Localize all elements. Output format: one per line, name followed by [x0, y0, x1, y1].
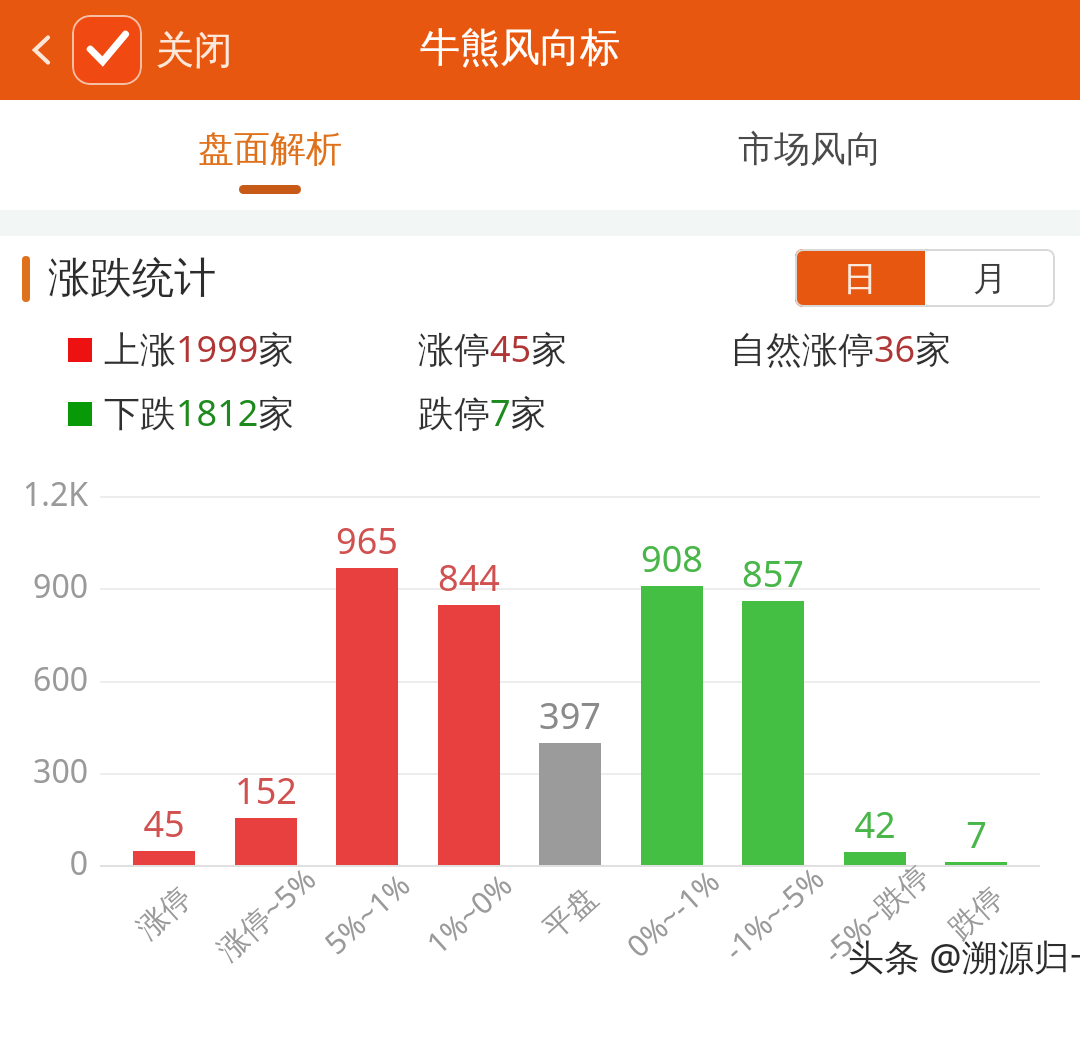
staticText: 965 — [336, 516, 398, 565]
staticText: 涨停~5% — [208, 858, 324, 969]
button[interactable]: Back — [14, 22, 70, 78]
staticText: 市场风向 — [738, 126, 882, 171]
staticText: 0 — [69, 841, 88, 885]
staticText: 397 — [539, 691, 601, 740]
staticText: 600 — [33, 657, 88, 701]
staticText: 1%~0% — [417, 864, 521, 963]
staticText: 0%~-1% — [617, 861, 727, 966]
staticText: 900 — [33, 564, 88, 608]
staticText: 下跌1812家 — [104, 388, 295, 437]
staticText: 自然涨停36家 — [730, 324, 952, 373]
staticText: 涨停 — [129, 879, 199, 947]
staticText: 上涨1999家 — [104, 324, 295, 373]
staticText: 跌停7家 — [418, 388, 547, 437]
button[interactable]: 月 — [925, 249, 1055, 307]
staticText: 152 — [235, 766, 297, 815]
staticText: 7 — [966, 810, 987, 859]
staticText: 300 — [33, 749, 88, 793]
staticText: 牛熊风向标 — [420, 22, 620, 72]
staticText: 日 — [843, 257, 877, 300]
staticText: 关闭 — [156, 26, 232, 74]
staticText: 盘面解析 — [198, 126, 342, 171]
staticText: 头条 @溯源归一 — [848, 932, 1080, 981]
staticText: 月 — [973, 257, 1007, 300]
staticText: 涨跌统计 — [48, 252, 216, 305]
button[interactable]: 日 — [795, 249, 925, 307]
button[interactable]: 盘面解析 — [0, 100, 540, 210]
staticText: 涨停45家 — [418, 324, 568, 373]
staticText: 857 — [742, 549, 804, 598]
staticText: -1%~-5% — [715, 858, 832, 969]
button[interactable]: 市场风向 — [540, 100, 1080, 210]
staticText: -5%~跌停 — [814, 855, 937, 972]
button[interactable]: 关闭 — [72, 10, 232, 90]
staticText: 45 — [143, 799, 185, 848]
staticText: 跌停 — [941, 879, 1011, 947]
staticText: 908 — [641, 534, 703, 583]
staticText: 平盘 — [535, 879, 605, 947]
staticText: 1.2K — [23, 472, 88, 516]
staticText: 42 — [854, 800, 896, 849]
staticText: 5%~1% — [315, 864, 419, 963]
staticText: 844 — [438, 553, 500, 602]
